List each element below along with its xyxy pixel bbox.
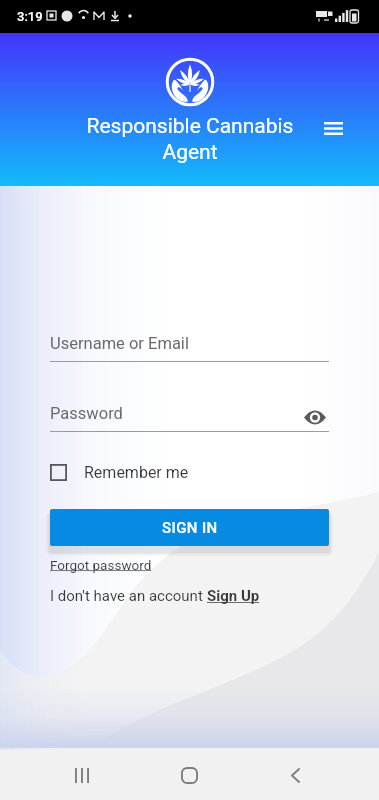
button[interactable]: Menu (312, 107, 354, 149)
button[interactable]: SIGN IN (50, 509, 329, 546)
button[interactable]: Forgot password (50, 557, 152, 573)
staticText: 3:19 (17, 9, 43, 24)
button[interactable]: Show password (301, 403, 329, 431)
button[interactable]: Sign Up (207, 587, 260, 605)
staticText: Forgot password (50, 557, 152, 573)
staticText: SIGN IN (162, 519, 218, 537)
staticText: Password (50, 404, 123, 423)
button[interactable]: Remember me (50, 458, 189, 486)
staticText: I don't have an account (50, 587, 207, 605)
staticText: Sign Up (207, 587, 260, 605)
staticText: Responsible Cannabis Agent (76, 114, 304, 164)
staticText: Username or Email (50, 334, 189, 353)
button[interactable]: Back (271, 751, 319, 799)
staticText: Remember me (84, 463, 189, 482)
button[interactable]: Home (165, 751, 213, 799)
button[interactable]: Recents (58, 751, 106, 799)
